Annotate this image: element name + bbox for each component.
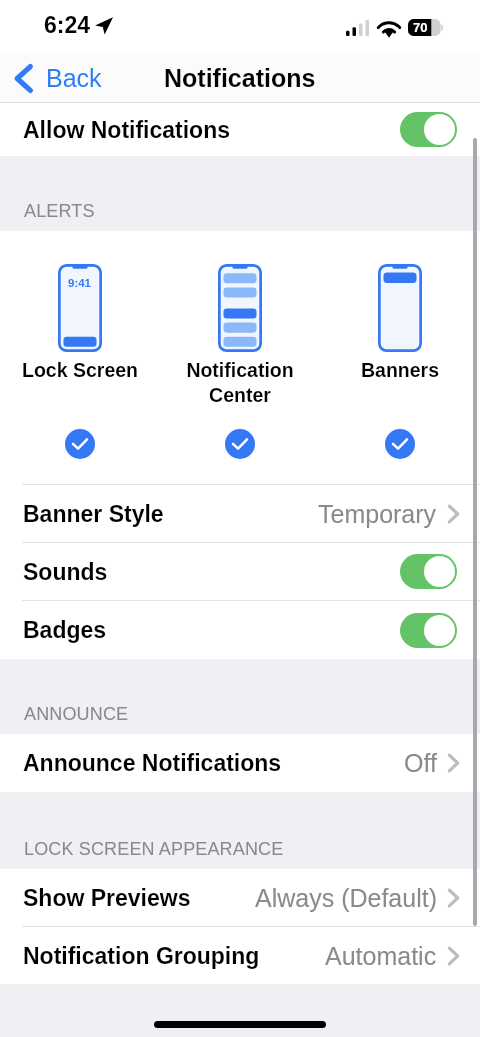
staticText: Automatic — [325, 942, 437, 970]
staticText: Announce Notifications — [23, 750, 404, 776]
other: Selected — [65, 429, 95, 459]
staticText: Sounds — [23, 559, 400, 585]
staticText: Off — [404, 749, 437, 777]
staticText: Banners — [320, 359, 480, 381]
staticText: Notification Center — [160, 359, 320, 406]
staticText: Always (Default) — [255, 884, 437, 912]
button[interactable]: Badges — [0, 601, 480, 659]
button[interactable]: Notification Grouping — [0, 927, 480, 984]
staticText: Badges — [23, 617, 400, 643]
staticText: Allow Notifications — [23, 117, 400, 143]
button[interactable]: Sounds — [0, 543, 480, 600]
staticText: Banner Style — [23, 501, 318, 527]
staticText: Notification Grouping — [23, 943, 325, 969]
staticText: ANNOUNCE — [24, 704, 129, 724]
other: Selected — [385, 429, 415, 459]
button[interactable]: Notification Center — [160, 231, 320, 484]
button[interactable]: Banner Style — [0, 485, 480, 542]
other: Selected — [225, 429, 255, 459]
button[interactable]: Show Previews — [0, 869, 480, 926]
staticText: LOCK SCREEN APPEARANCE — [24, 839, 284, 859]
button[interactable]: Back — [0, 53, 114, 103]
button[interactable]: Allow Notifications — [0, 103, 480, 156]
staticText: Temporary — [318, 500, 437, 528]
staticText: ALERTS — [24, 201, 95, 221]
staticText: Back — [46, 64, 102, 92]
staticText: Show Previews — [23, 885, 255, 911]
staticText: 6:24 — [44, 12, 91, 38]
staticText: 70 — [413, 20, 428, 35]
button[interactable]: 9:41 — [0, 231, 160, 484]
staticText: Lock Screen — [0, 359, 160, 381]
button[interactable]: Announce Notifications — [0, 734, 480, 792]
staticText: Notifications — [164, 64, 316, 92]
staticText: 9:41 — [68, 277, 92, 290]
button[interactable]: Banners — [320, 231, 480, 484]
